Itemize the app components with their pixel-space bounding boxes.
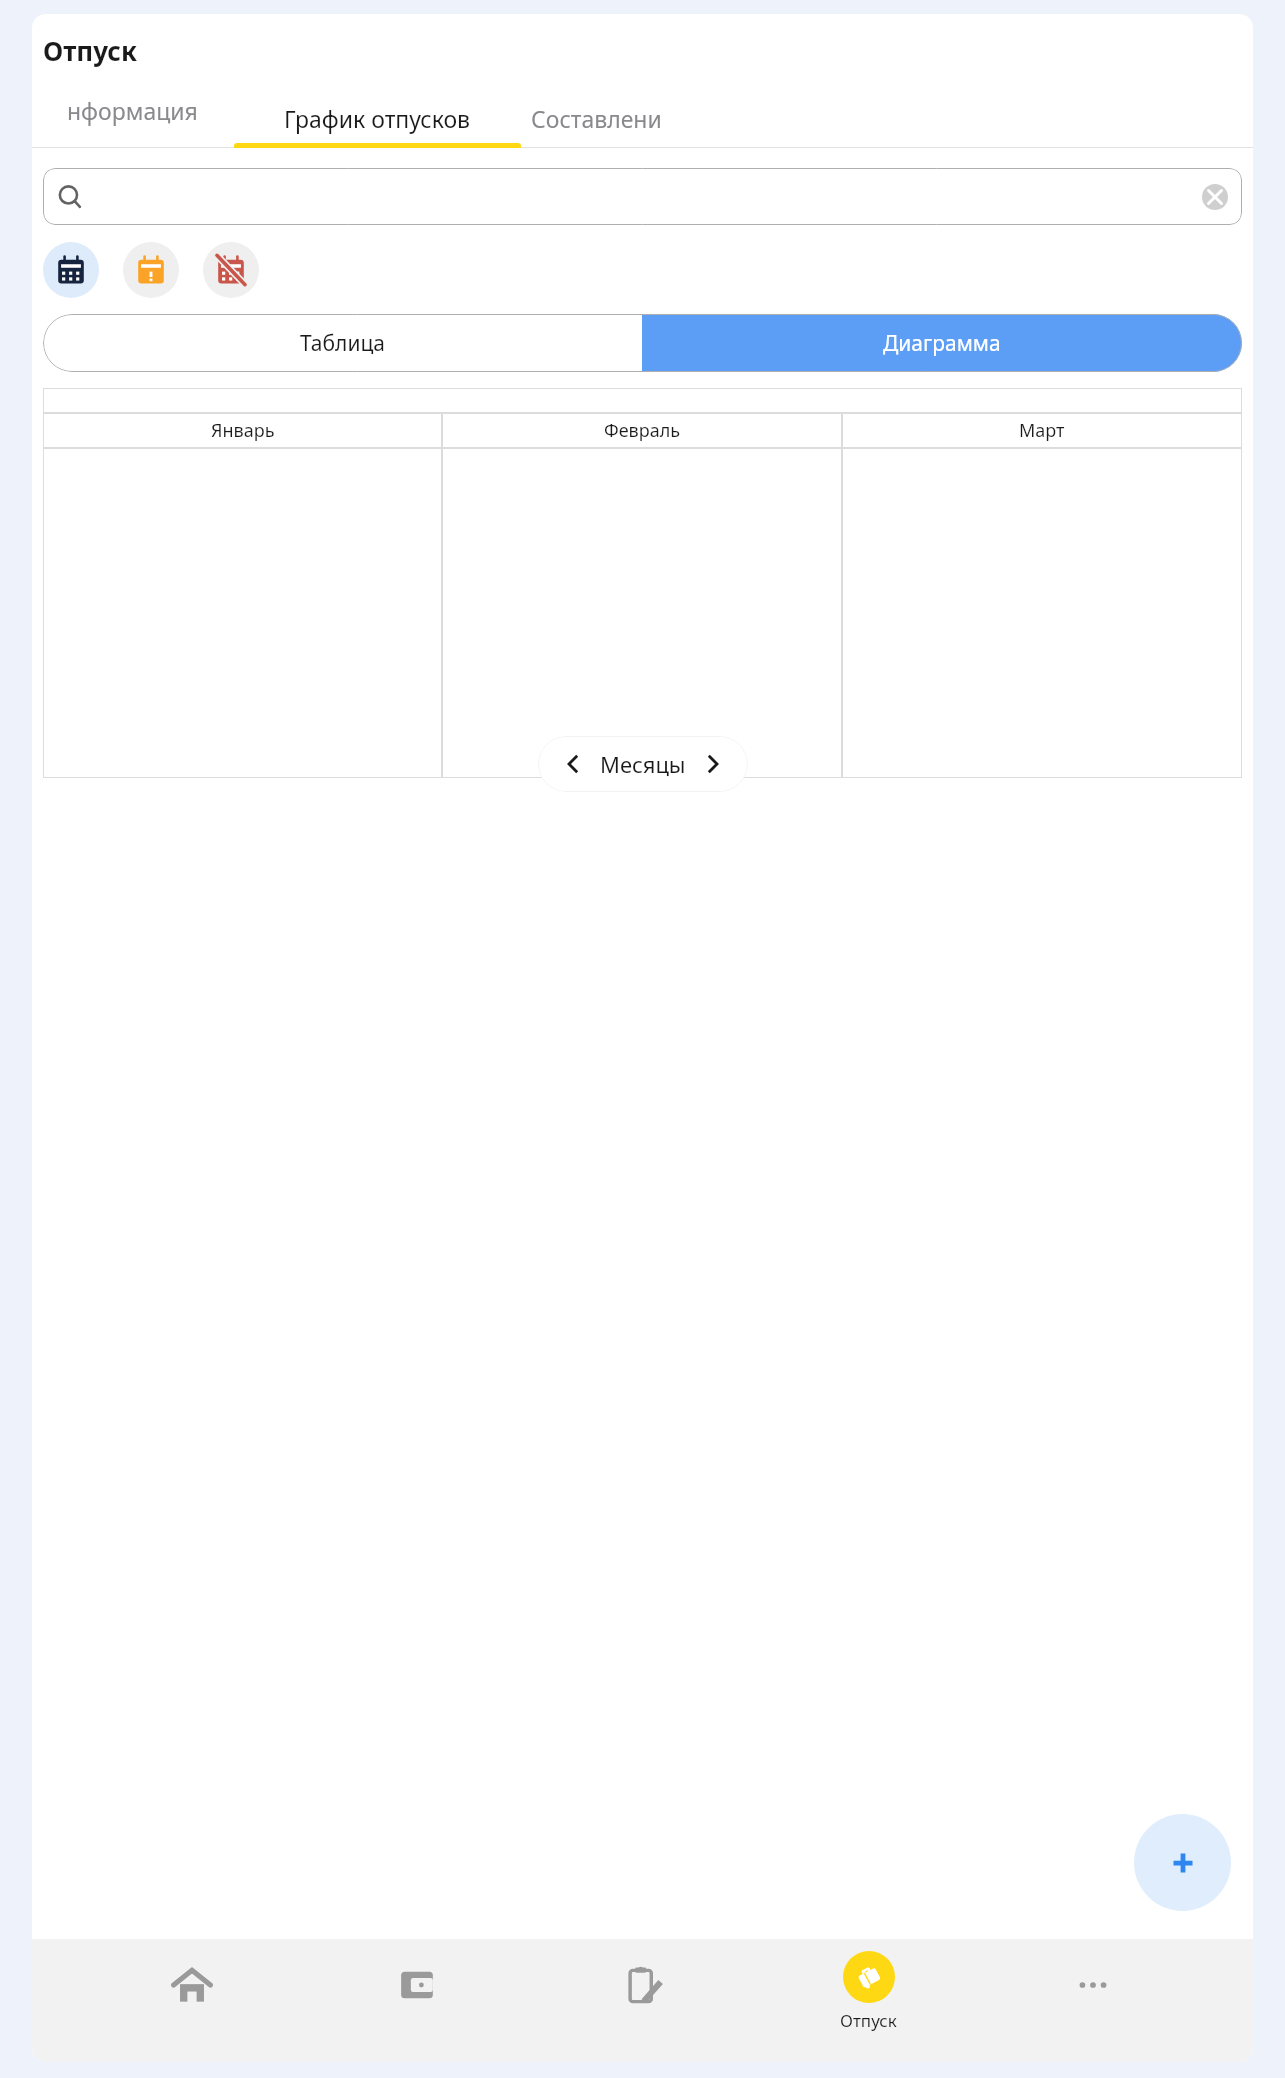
button[interactable]: Pending vacations bbox=[123, 242, 179, 298]
button[interactable]: More bbox=[1028, 1939, 1158, 2062]
staticText: Диаграмма bbox=[883, 329, 1001, 358]
button[interactable]: All vacations bbox=[43, 242, 99, 298]
button[interactable]: Tasks bbox=[578, 1939, 708, 2062]
staticText: Таблица bbox=[300, 329, 385, 358]
staticText: Январь bbox=[211, 418, 275, 443]
button[interactable]: Clear search bbox=[43, 168, 1242, 225]
other: Previous months bbox=[560, 751, 586, 777]
button[interactable]: Home bbox=[127, 1939, 257, 2062]
staticText: График отпусков bbox=[284, 103, 471, 134]
staticText: Март bbox=[1019, 418, 1065, 443]
button[interactable]: нформация bbox=[32, 86, 232, 148]
staticText: Отпуск bbox=[840, 2009, 897, 2032]
other: Next months bbox=[700, 751, 726, 777]
button[interactable]: Cancelled vacations bbox=[203, 242, 259, 298]
button[interactable]: Wallet bbox=[352, 1939, 482, 2062]
button[interactable]: Составлени bbox=[523, 86, 1253, 148]
button[interactable]: Previous months bbox=[538, 736, 748, 792]
staticText: Отпуск bbox=[43, 33, 137, 68]
staticText: Месяцы bbox=[600, 749, 686, 779]
button[interactable]: График отпусков bbox=[232, 86, 523, 148]
button[interactable]: Январь bbox=[43, 413, 442, 448]
button[interactable]: Февраль bbox=[442, 413, 842, 448]
button[interactable]: Таблица bbox=[43, 314, 642, 372]
staticText: Февраль bbox=[604, 418, 681, 443]
button[interactable]: Март bbox=[842, 413, 1242, 448]
staticText: Составлени bbox=[531, 103, 662, 134]
button[interactable]: Add vacation bbox=[1134, 1814, 1231, 1911]
button[interactable]: Clear search bbox=[1202, 184, 1228, 210]
button[interactable]: Диаграмма bbox=[642, 314, 1242, 372]
button[interactable]: Отпуск bbox=[803, 1939, 933, 2062]
staticText: нформация bbox=[67, 95, 198, 126]
